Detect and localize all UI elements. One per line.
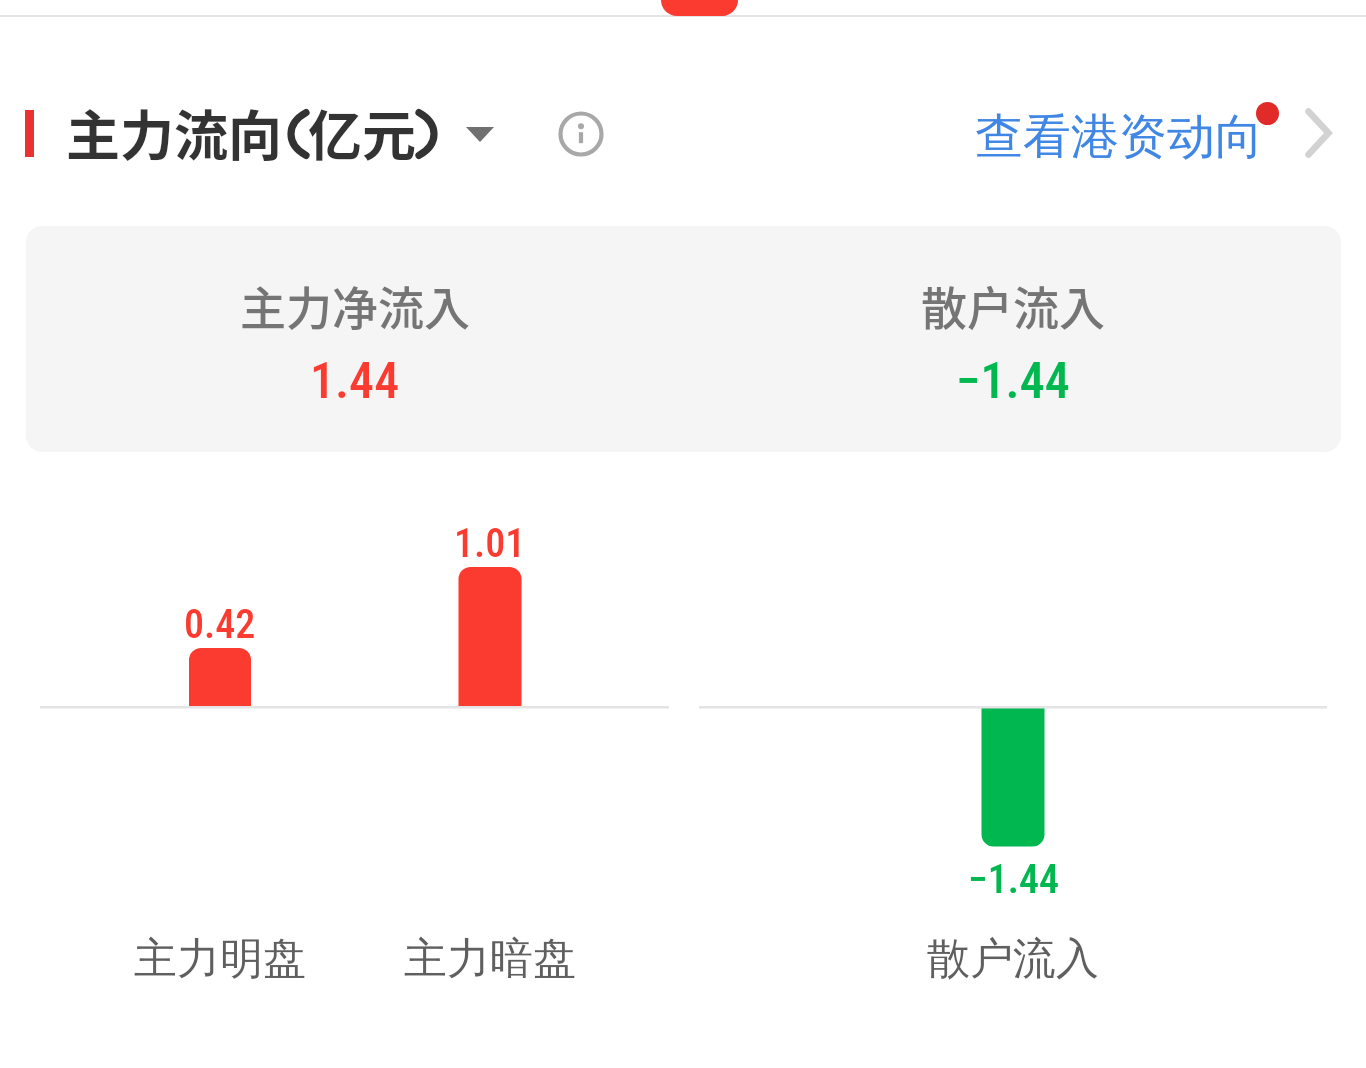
staticText: 亿元 [308,93,416,167]
staticText: 查看港资动向 [975,107,1263,167]
staticText: 0.42 [184,601,256,648]
staticText: 1.01 [454,520,526,567]
staticText: 1.44 [310,352,400,411]
staticText: 主力明盘 [134,932,306,986]
button[interactable]: 查看港资动向 [960,96,1350,170]
staticText: 主力流向 [66,93,282,167]
button[interactable]: 主力流向 [60,106,500,180]
button[interactable]: Selected tab [661,0,738,16]
staticText: −1.44 [968,856,1059,903]
staticText: −1.44 [956,352,1070,411]
button[interactable]: 主力净流入 [26,226,1341,452]
staticText: 散户流入 [927,932,1099,986]
staticText: 主力暗盘 [404,932,576,986]
staticText: 散户流入 [921,272,1105,339]
button[interactable]: About main capital flow [552,105,610,163]
staticText: 主力净流入 [240,272,470,339]
